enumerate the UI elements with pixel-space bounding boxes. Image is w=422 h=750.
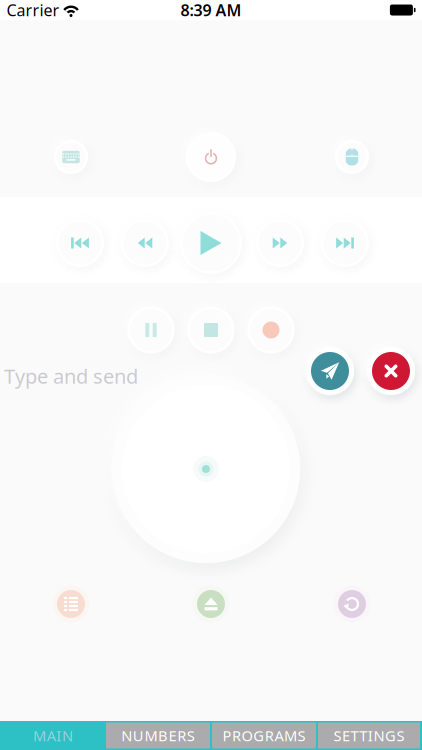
staticText: PROGRAMS: [222, 726, 306, 745]
button[interactable]: Pause: [127, 306, 174, 353]
button[interactable]: Send: [306, 347, 354, 395]
button[interactable]: SETTINGS: [317, 721, 421, 750]
button[interactable]: Restart: [333, 585, 370, 622]
button[interactable]: Power: [186, 132, 236, 182]
button[interactable]: Cancel: [367, 347, 415, 395]
staticText: NUMBERS: [121, 726, 195, 745]
button[interactable]: Mouse: [335, 140, 369, 174]
button[interactable]: Playlist: [52, 585, 89, 622]
button[interactable]: Next track: [321, 219, 369, 267]
button[interactable]: Trackpad: [112, 375, 300, 563]
staticText: MAIN: [33, 726, 73, 745]
button[interactable]: MAIN: [1, 721, 105, 750]
staticText: Type and send: [4, 363, 138, 389]
button[interactable]: Previous track: [56, 219, 104, 267]
button[interactable]: Rewind: [121, 219, 169, 267]
button[interactable]: NUMBERS: [105, 721, 211, 750]
staticText: Carrier: [6, 0, 59, 21]
button[interactable]: Record: [247, 306, 294, 353]
button[interactable]: Play: [180, 212, 242, 274]
staticText: 8:39 AM: [180, 0, 241, 21]
button[interactable]: PROGRAMS: [211, 721, 317, 750]
button[interactable]: Stop: [187, 306, 234, 353]
button[interactable]: Keyboard: [54, 140, 88, 174]
button[interactable]: Eject: [192, 585, 229, 622]
staticText: SETTINGS: [333, 726, 405, 745]
button[interactable]: Fast forward: [256, 219, 304, 267]
